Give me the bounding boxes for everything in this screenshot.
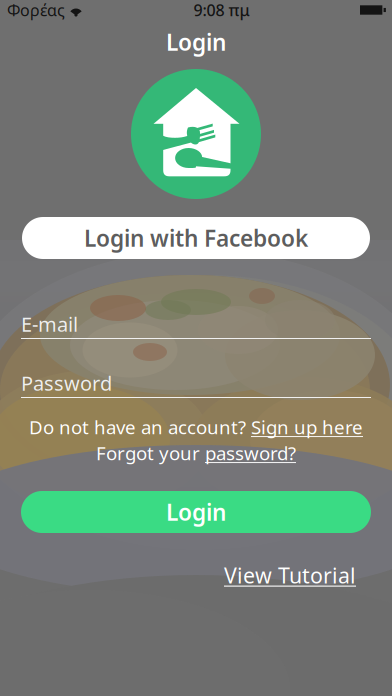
button[interactable]: Login with Facebook <box>22 217 370 259</box>
staticText: Φορέας <box>7 0 65 21</box>
staticText: Login <box>166 497 226 527</box>
staticText: password? <box>205 441 296 465</box>
button[interactable]: Login <box>21 491 371 533</box>
button[interactable]: password? <box>205 441 296 465</box>
staticText: Do not have an account? <box>29 415 246 439</box>
staticText: E-mail <box>21 311 78 337</box>
button[interactable]: View Tutorial <box>224 561 356 589</box>
button[interactable]: Sign up here <box>251 415 363 439</box>
staticText: 9:08 πμ <box>193 0 249 21</box>
staticText: Login with Facebook <box>84 223 308 253</box>
staticText: Login <box>166 27 226 57</box>
staticText: Sign up here <box>251 415 363 439</box>
staticText: Password <box>21 370 112 396</box>
staticText: View Tutorial <box>224 561 356 589</box>
staticText: Forgot your <box>96 441 200 465</box>
